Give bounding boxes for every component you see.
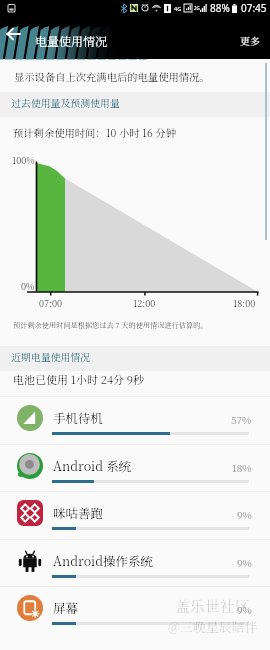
- staticText: 屏幕: [53, 599, 79, 617]
- staticText: @三晚星辰陪伴: [168, 617, 258, 636]
- button[interactable]: 屏幕: [0, 586, 270, 634]
- staticText: 18%: [232, 460, 252, 474]
- staticText: 0%: [21, 280, 35, 293]
- staticText: 2G: [194, 5, 200, 11]
- staticText: Android 系统: [53, 457, 132, 475]
- staticText: 9%: [237, 507, 252, 521]
- staticText: 预计剩余使用时间：10 小时 16 分钟: [13, 125, 176, 140]
- button[interactable]: Android操作系统: [0, 539, 270, 587]
- staticText: 预计剩余使用时间是根据您过去 7 天的使用情况进行估算的。: [13, 320, 208, 330]
- button[interactable]: 更多: [240, 33, 260, 47]
- staticText: 88%: [210, 1, 230, 15]
- button[interactable]: Android 系统: [0, 444, 270, 492]
- button[interactable]: 手机待机: [0, 396, 270, 444]
- staticText: 近期电量使用情况: [11, 350, 91, 364]
- staticText: 电池已使用 1小时 24分 9秒: [13, 371, 145, 387]
- staticText: 电量使用情况: [35, 32, 108, 49]
- staticText: 手机待机: [53, 409, 104, 427]
- staticText: 4G: [174, 5, 182, 12]
- staticText: 9%: [237, 602, 252, 616]
- staticText: 07:45: [241, 1, 267, 15]
- button[interactable]: Back: [6, 27, 20, 41]
- staticText: 18:00: [233, 297, 256, 310]
- staticText: 更多: [240, 33, 260, 47]
- staticText: 07:00: [39, 297, 62, 310]
- staticText: 显示设备自上次充满电后的电量使用情况。: [14, 69, 210, 84]
- button[interactable]: 咪咕善跑: [0, 491, 270, 539]
- staticText: Android操作系统: [53, 552, 154, 570]
- staticText: 57%: [231, 412, 252, 426]
- staticText: 100%: [12, 154, 35, 167]
- staticText: 盖乐世社区: [175, 595, 251, 617]
- staticText: 12:00: [133, 297, 156, 310]
- staticText: 咪咕善跑: [53, 504, 104, 522]
- staticText: 9%: [237, 555, 252, 569]
- staticText: 过去使用量及预测使用量: [11, 96, 120, 110]
